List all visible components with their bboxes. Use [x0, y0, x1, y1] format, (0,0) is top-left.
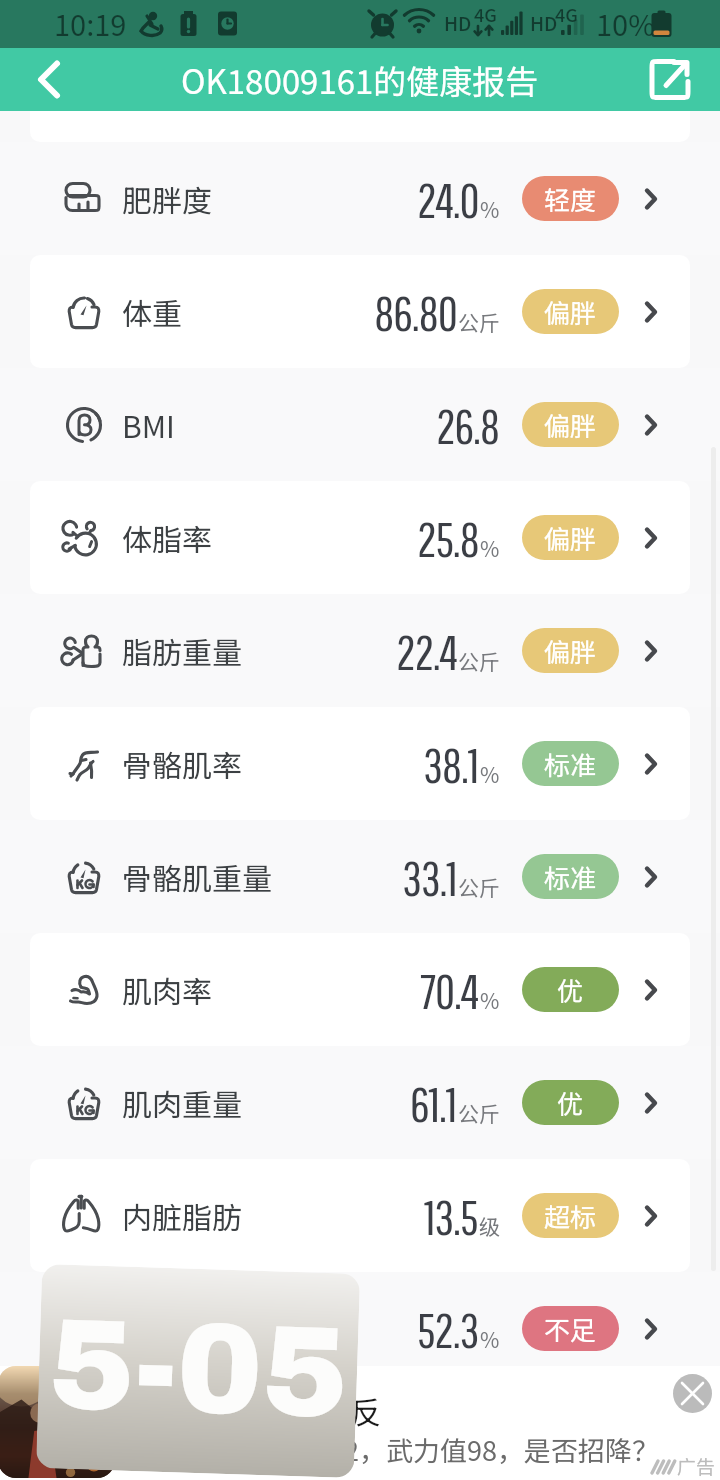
button[interactable]: 体重	[30, 255, 690, 368]
staticText: 5-05	[47, 1295, 350, 1444]
staticText: 骨骼肌率	[122, 742, 242, 785]
staticText: OK18009161的健康报告	[181, 56, 539, 104]
staticText: 级	[479, 1211, 500, 1241]
button[interactable]: 脂肪重量	[0, 594, 720, 707]
staticText: %	[480, 533, 500, 563]
staticText: 肌肉重量	[122, 1081, 242, 1124]
button[interactable]: 肌肉率	[30, 933, 690, 1046]
staticText: 肥胖度	[122, 177, 212, 220]
staticText: 体脂率	[122, 516, 212, 559]
staticText: 26.8	[436, 397, 500, 453]
staticText: BMI	[122, 403, 175, 446]
staticText: 偏胖	[544, 293, 597, 331]
staticText: 公斤	[458, 1098, 500, 1128]
button[interactable]: 偏胖	[522, 515, 619, 560]
staticText: 偏胖	[544, 519, 597, 557]
button[interactable]: 肌肉重量	[0, 1046, 720, 1159]
button[interactable]: 骨骼肌重量	[0, 820, 720, 933]
staticText: 22.4	[396, 623, 457, 679]
staticText: 4G	[474, 1, 497, 27]
staticText: 轻度	[544, 180, 597, 218]
staticText: HD	[444, 9, 472, 37]
staticText: 体重	[122, 290, 182, 333]
button[interactable]: 超标	[522, 1193, 619, 1238]
staticText: 优	[557, 971, 584, 1009]
button[interactable]: 偏胖	[522, 628, 619, 673]
staticText: %	[480, 194, 500, 224]
button[interactable]: Close ad	[673, 1374, 712, 1413]
staticText: 24.0	[417, 171, 479, 227]
staticText: %	[480, 759, 500, 789]
staticText: %	[480, 985, 500, 1015]
button[interactable]: 不足	[522, 1306, 619, 1351]
staticText: 公斤	[458, 646, 500, 676]
staticText: 标准	[544, 858, 597, 896]
staticText: 超标	[544, 1197, 597, 1235]
button[interactable]: 标准	[522, 854, 619, 899]
button[interactable]: 轻度	[522, 176, 619, 221]
staticText: 骨骼肌重量	[122, 855, 272, 898]
staticText: HD	[530, 9, 558, 37]
staticText: 不足	[544, 1310, 597, 1348]
staticText: 广告	[677, 1452, 716, 1480]
staticText: 38.1	[423, 736, 479, 792]
staticText: 肌肉率	[122, 968, 212, 1011]
button[interactable]: 骨骼肌率	[30, 707, 690, 820]
staticText: 内脏脂肪	[122, 1194, 242, 1237]
staticText: 偏胖	[544, 406, 597, 444]
button[interactable]: BMI	[0, 368, 720, 481]
button[interactable]: 优	[522, 1080, 619, 1125]
button[interactable]: 优	[522, 967, 619, 1012]
staticText: 公斤	[458, 307, 500, 337]
button[interactable]: 反	[0, 1366, 720, 1480]
staticText: 10:19	[54, 2, 127, 44]
staticText: 61.1	[410, 1075, 457, 1131]
staticText: 优	[557, 1084, 584, 1122]
button[interactable]: 标准	[522, 741, 619, 786]
staticText: 86.80	[374, 284, 457, 340]
staticText: 10%	[596, 2, 655, 44]
button[interactable]: Back	[17, 48, 81, 111]
staticText: 2，武力值98，是否招降？	[344, 1430, 659, 1469]
button[interactable]: 偏胖	[522, 402, 619, 447]
button[interactable]: 肥胖度	[0, 142, 720, 255]
staticText: 33.1	[402, 849, 457, 905]
staticText: 4G	[555, 1, 578, 27]
staticText: 25.8	[417, 510, 479, 566]
button[interactable]: 内脏脂肪	[30, 1159, 690, 1272]
staticText: 脂肪重量	[122, 629, 242, 672]
button[interactable]: 偏胖	[522, 289, 619, 334]
staticText: 标准	[544, 745, 597, 783]
staticText: 偏胖	[544, 632, 597, 670]
staticText: 70.4	[420, 962, 479, 1018]
staticText: 13.5	[424, 1188, 478, 1244]
staticText: 反	[350, 1388, 381, 1433]
staticText: 52.3	[417, 1301, 479, 1357]
button[interactable]: 体脂率	[30, 481, 690, 594]
staticText: 公斤	[458, 872, 500, 902]
button[interactable]: 52.3	[0, 1272, 720, 1385]
button[interactable]: Share	[638, 48, 702, 111]
staticText: %	[480, 1324, 500, 1354]
